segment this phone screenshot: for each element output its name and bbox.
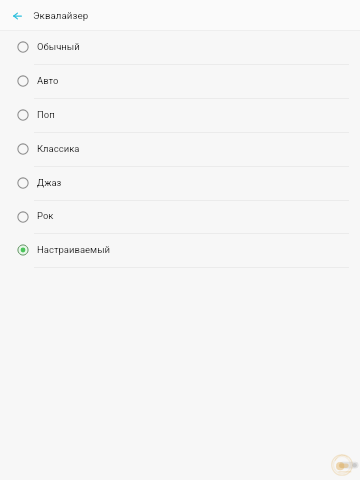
staticText: Эквалайзер xyxy=(33,10,89,21)
button[interactable]: Джаз xyxy=(0,167,360,201)
staticText: Авто xyxy=(37,75,59,86)
button[interactable]: Авто xyxy=(0,65,360,99)
button[interactable]: Обычный xyxy=(0,31,360,65)
button[interactable]: Back xyxy=(0,0,33,31)
button[interactable]: Рок xyxy=(0,201,360,234)
staticText: Настраиваемый xyxy=(37,244,111,255)
button[interactable]: Настраиваемый xyxy=(0,234,360,268)
staticText: Обычный xyxy=(37,41,80,52)
button[interactable]: Поп xyxy=(0,99,360,133)
staticText: Рок xyxy=(37,210,54,221)
button[interactable]: Классика xyxy=(0,133,360,167)
staticText: Поп xyxy=(37,109,55,120)
staticText: Джаз xyxy=(37,177,62,188)
staticText: Классика xyxy=(37,143,80,154)
